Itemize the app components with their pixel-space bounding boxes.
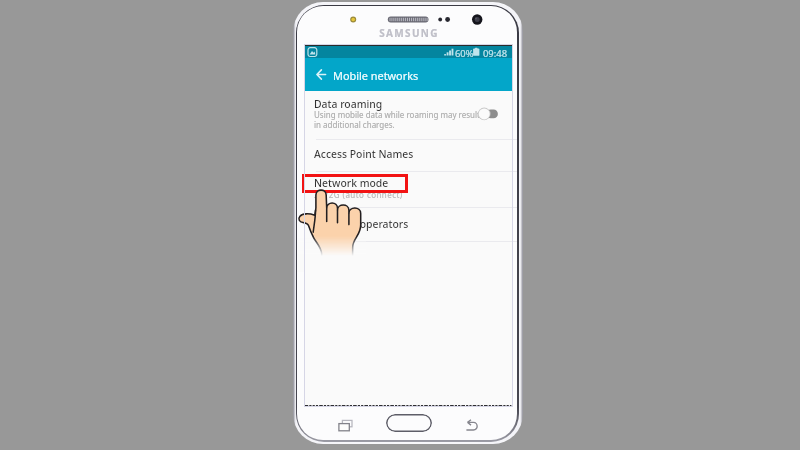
button[interactable]: Back: [459, 412, 485, 438]
staticText: Network mode: [314, 176, 389, 190]
staticText: 60%: [455, 47, 474, 59]
staticText: 3G/2G (auto connect): [314, 189, 403, 200]
staticText: SAMSUNG: [299, 26, 517, 40]
button[interactable]: Home: [386, 414, 432, 432]
staticText: 09:48: [483, 47, 508, 59]
staticText: Mobile networks: [333, 68, 419, 83]
button[interactable]: Data roaming: [304, 90, 512, 139]
staticText: Data roaming: [314, 97, 383, 111]
button[interactable]: Network operators: [304, 207, 512, 241]
staticText: Using mobile data while roaming may resu…: [314, 109, 480, 131]
button[interactable]: Data roaming off: [478, 104, 504, 124]
button[interactable]: Network mode: [304, 171, 512, 208]
button[interactable]: Recent apps: [332, 412, 358, 438]
staticText: Access Point Names: [314, 147, 414, 161]
button[interactable]: Access Point Names: [304, 139, 512, 171]
staticText: Network operators: [314, 217, 409, 231]
button[interactable]: Navigate up: [310, 64, 331, 85]
